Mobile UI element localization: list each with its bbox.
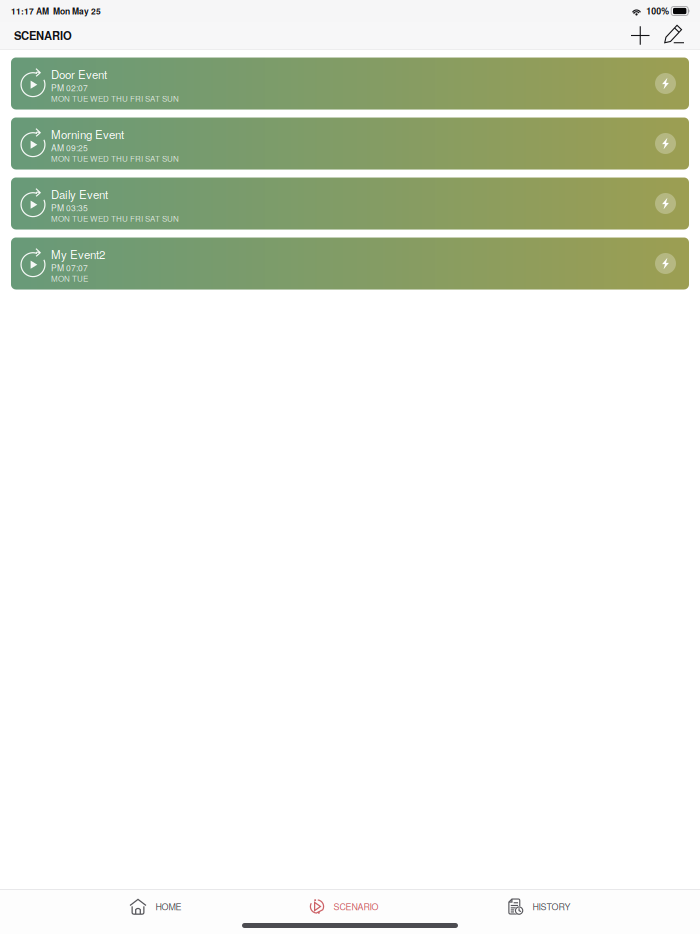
staticText: 100% xyxy=(642,5,669,17)
staticText: MON TUE WED THU FRI SAT SUN xyxy=(51,213,179,224)
button[interactable]: My Event2 xyxy=(11,237,689,289)
staticText: Daily Event xyxy=(51,186,108,202)
staticText: Door Event xyxy=(51,66,107,82)
staticText: PM 07:07 xyxy=(51,261,88,274)
staticText: Morning Event xyxy=(51,126,124,142)
staticText: MON TUE xyxy=(51,273,88,284)
staticText: PM 02:07 xyxy=(51,81,88,94)
button[interactable]: HISTORY xyxy=(506,888,570,921)
staticText: HISTORY xyxy=(532,900,570,913)
staticText: SCENARIO xyxy=(14,27,72,43)
staticText: PM 03:35 xyxy=(51,201,88,214)
button[interactable]: Edit scenarios xyxy=(660,23,691,48)
staticText: HOME xyxy=(155,900,181,913)
staticText: AM 09:25 xyxy=(51,141,88,154)
button[interactable]: Add scenario xyxy=(623,23,660,48)
button[interactable]: Door Event xyxy=(11,57,689,109)
button[interactable]: SCENARIO xyxy=(309,889,378,920)
staticText: 11:17 AM xyxy=(11,5,49,17)
staticText: My Event2 xyxy=(51,246,105,262)
button[interactable]: Daily Event xyxy=(11,177,689,229)
staticText: MON TUE WED THU FRI SAT SUN xyxy=(51,153,179,164)
button[interactable]: HOME xyxy=(129,888,181,921)
staticText: SCENARIO xyxy=(333,900,378,913)
staticText: MON TUE WED THU FRI SAT SUN xyxy=(51,93,179,104)
button[interactable]: Morning Event xyxy=(11,117,689,169)
staticText: Mon May 25 xyxy=(49,5,101,17)
